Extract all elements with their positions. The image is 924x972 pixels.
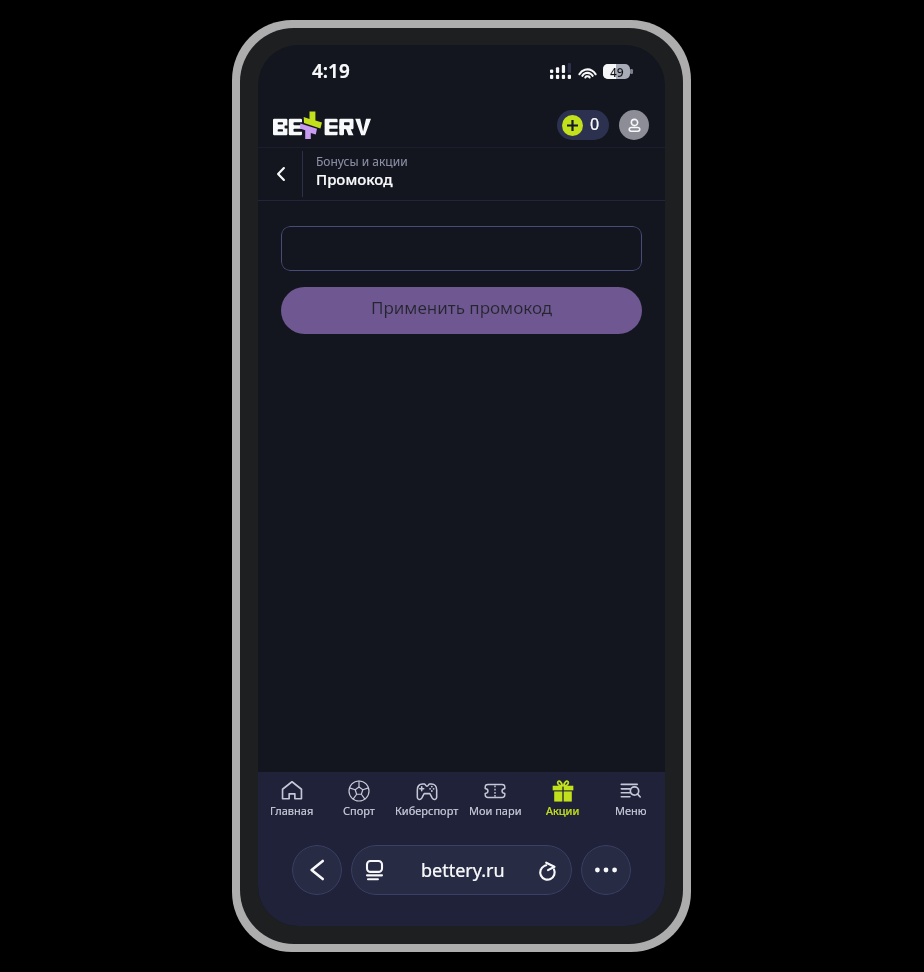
- button[interactable]: Пополнить баланс: [557, 110, 609, 140]
- staticText: Мои пари: [469, 803, 522, 818]
- staticText: 0: [590, 113, 600, 135]
- button[interactable]: Спорт: [325, 780, 393, 824]
- button[interactable]: More options: [581, 845, 631, 895]
- staticText: Меню: [615, 803, 647, 818]
- staticText: Акции: [546, 803, 580, 818]
- staticText: Промокод: [316, 169, 393, 189]
- button[interactable]: Главная: [258, 780, 325, 824]
- button[interactable]: Акции: [529, 780, 597, 824]
- staticText: Бонусы и акции: [316, 153, 408, 169]
- button[interactable]: Киберспорт: [393, 780, 461, 824]
- staticText: Спорт: [343, 803, 375, 818]
- staticText: 4:19: [312, 58, 350, 84]
- staticText: 49: [610, 64, 624, 79]
- button[interactable]: bettery.ru, адресная строка: [351, 845, 572, 895]
- button[interactable]: Меню: [597, 780, 665, 824]
- staticText: Применить промокод: [371, 296, 553, 319]
- staticText: Главная: [270, 803, 314, 818]
- button[interactable]: Back: [292, 845, 342, 895]
- staticText: bettery.ru: [421, 858, 505, 883]
- button[interactable]: Мои пари: [461, 780, 529, 824]
- button[interactable]: Profile: [619, 110, 649, 140]
- button[interactable]: Back: [258, 148, 303, 200]
- staticText: Киберспорт: [395, 803, 459, 818]
- button[interactable]: Применить промокод: [281, 287, 642, 334]
- button[interactable]: Промокод, поле ввода: [281, 226, 642, 271]
